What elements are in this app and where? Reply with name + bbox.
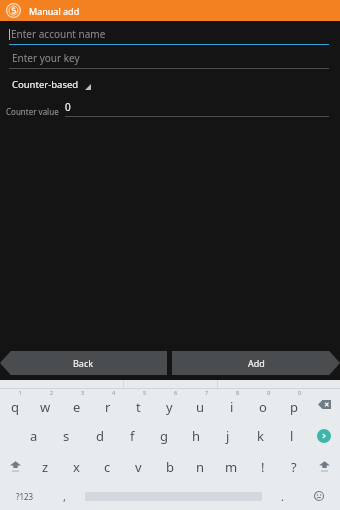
staticText: ?123 xyxy=(16,491,34,502)
staticText: Manual add xyxy=(29,5,80,17)
staticText: n xyxy=(196,458,205,476)
button[interactable]: v xyxy=(123,451,154,482)
staticText: 0 xyxy=(298,389,302,396)
staticText: r xyxy=(105,398,111,416)
staticText: 7 xyxy=(205,389,209,396)
staticText: 4 xyxy=(112,389,116,396)
button[interactable]: 5 xyxy=(123,389,154,420)
staticText: j xyxy=(226,427,230,445)
button[interactable]: 7 xyxy=(185,389,216,420)
button[interactable]: Shift xyxy=(309,451,340,482)
staticText: Counter value xyxy=(6,106,59,117)
staticText: 3 xyxy=(81,389,85,396)
button[interactable]: 0 xyxy=(278,389,309,420)
staticText: . xyxy=(281,489,284,504)
button[interactable]: Backspace xyxy=(309,389,340,420)
staticText: x xyxy=(73,458,80,476)
staticText: m xyxy=(225,458,238,476)
button[interactable]: Shift xyxy=(0,451,30,482)
button[interactable]: b xyxy=(154,451,185,482)
button[interactable]: Counter-based xyxy=(12,78,340,91)
button[interactable]: x xyxy=(61,451,92,482)
staticText: Back xyxy=(73,357,94,369)
staticText: b xyxy=(166,458,174,476)
button[interactable]: Back xyxy=(0,351,167,375)
button[interactable]: c xyxy=(92,451,123,482)
button[interactable]: g xyxy=(148,420,180,451)
staticText: y xyxy=(166,398,173,416)
staticText: s xyxy=(63,427,70,445)
staticText: i xyxy=(230,398,234,416)
staticText: o xyxy=(259,398,267,416)
staticText: h xyxy=(192,427,201,445)
button[interactable]: Emoji xyxy=(297,482,340,510)
staticText: 9 xyxy=(267,389,271,396)
staticText: ? xyxy=(291,458,297,476)
staticText: g xyxy=(160,427,168,445)
button[interactable] xyxy=(79,482,267,510)
staticText: z xyxy=(42,458,49,476)
staticText: t xyxy=(136,398,141,416)
button[interactable]: ! xyxy=(247,451,278,482)
button[interactable]: d xyxy=(83,420,116,451)
button[interactable]: h xyxy=(180,420,212,451)
staticText: k xyxy=(257,427,264,445)
button[interactable]: 3 xyxy=(61,389,92,420)
button[interactable]: Add xyxy=(172,351,340,375)
button[interactable]: , xyxy=(49,482,79,510)
button[interactable]: f xyxy=(116,420,148,451)
staticText: c xyxy=(104,458,111,476)
staticText: d xyxy=(96,427,104,445)
staticText: Add xyxy=(248,357,265,369)
button[interactable]: j xyxy=(212,420,244,451)
staticText: Enter account name xyxy=(11,27,106,41)
button[interactable]: ? xyxy=(278,451,309,482)
staticText: Counter-based xyxy=(12,78,79,91)
button[interactable]: l xyxy=(276,420,308,451)
staticText: 2 xyxy=(50,389,54,396)
staticText: v xyxy=(135,458,142,476)
staticText: u xyxy=(196,398,205,416)
staticText: p xyxy=(290,398,298,416)
button[interactable]: s xyxy=(50,420,83,451)
staticText: q xyxy=(11,398,19,416)
button[interactable]: ?123 xyxy=(0,482,49,510)
button[interactable]: n xyxy=(185,451,216,482)
staticText: 0 xyxy=(65,100,71,114)
staticText: Enter your key xyxy=(12,51,80,65)
staticText: , xyxy=(63,489,66,504)
staticText: ! xyxy=(261,458,265,476)
staticText: 1 xyxy=(19,389,23,396)
button[interactable]: z xyxy=(30,451,61,482)
staticText: l xyxy=(290,427,294,445)
button[interactable]: a xyxy=(17,420,50,451)
staticText: f xyxy=(130,427,135,445)
button[interactable]: m xyxy=(216,451,247,482)
button[interactable]: . xyxy=(267,482,297,510)
button[interactable]: k xyxy=(244,420,276,451)
button[interactable]: 6 xyxy=(154,389,185,420)
staticText: 6 xyxy=(174,389,178,396)
staticText: a xyxy=(30,427,38,445)
staticText: e xyxy=(73,398,81,416)
button[interactable]: Enter xyxy=(308,420,340,451)
button[interactable]: 1 xyxy=(0,389,30,420)
button[interactable]: 8 xyxy=(216,389,247,420)
button[interactable]: 9 xyxy=(247,389,278,420)
staticText: 8 xyxy=(236,389,240,396)
button[interactable]: 2 xyxy=(30,389,61,420)
button[interactable]: 4 xyxy=(92,389,123,420)
staticText: w xyxy=(40,398,51,416)
staticText: 5 xyxy=(143,389,147,396)
